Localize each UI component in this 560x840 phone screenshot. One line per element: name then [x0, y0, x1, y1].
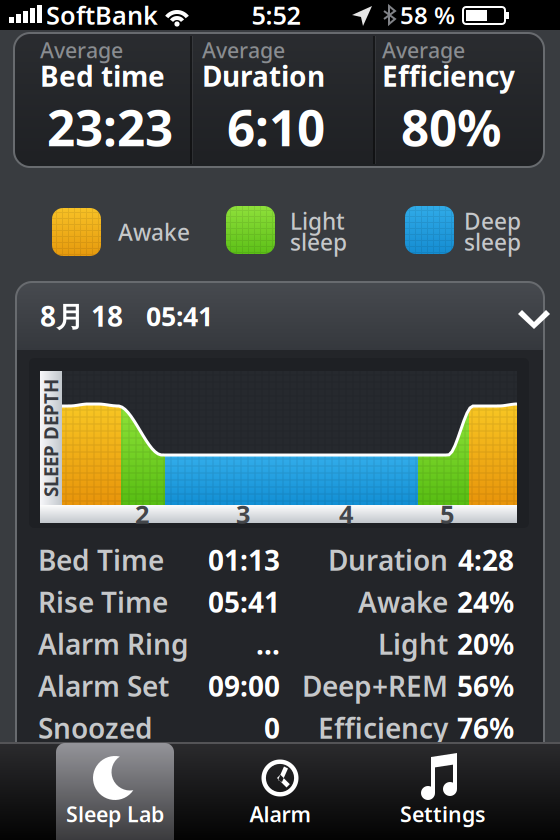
- staticText: Snoozed: [38, 709, 153, 747]
- button[interactable]: Sleep Lab: [56, 743, 174, 840]
- staticText: Average: [202, 36, 285, 64]
- staticText: 20%: [457, 625, 514, 663]
- staticText: 05:41: [208, 583, 280, 621]
- staticText: 5:52: [251, 0, 300, 32]
- staticText: Efficiency: [382, 57, 515, 95]
- staticText: Light: [378, 625, 448, 663]
- button[interactable]: Settings: [384, 743, 502, 840]
- staticText: 4:28: [458, 541, 514, 579]
- staticText: 09:00: [208, 667, 280, 705]
- staticText: Light: [290, 206, 345, 236]
- staticText: sleep: [290, 227, 347, 257]
- staticText: SoftBank: [46, 0, 158, 32]
- staticText: 6:10: [227, 94, 325, 160]
- staticText: Alarm Set: [38, 667, 169, 705]
- staticText: Rise Time: [38, 583, 168, 621]
- staticText: 8月 18: [40, 297, 123, 335]
- staticText: SLEEP DEPTH: [0, 426, 110, 450]
- staticText: 2: [135, 497, 149, 531]
- staticText: 56%: [457, 667, 514, 705]
- staticText: Deep: [464, 206, 521, 236]
- staticText: sleep: [464, 227, 521, 257]
- staticText: Duration: [202, 57, 325, 95]
- button[interactable]: Alarm: [221, 743, 339, 840]
- staticText: ...: [256, 625, 280, 663]
- button[interactable]: Collapse day 8月 18: [16, 282, 544, 350]
- staticText: 4: [339, 497, 353, 531]
- staticText: Bed time: [40, 57, 165, 95]
- staticText: Alarm Ring: [38, 625, 189, 663]
- staticText: Deep+REM: [302, 667, 448, 705]
- staticText: 80%: [401, 94, 501, 160]
- staticText: Average: [40, 36, 123, 64]
- staticText: Average: [382, 36, 465, 64]
- staticText: 5: [440, 497, 454, 531]
- staticText: 01:13: [208, 541, 280, 579]
- staticText: 23:23: [47, 94, 173, 160]
- staticText: Awake: [358, 583, 448, 621]
- staticText: 58 %: [400, 0, 455, 31]
- staticText: Duration: [328, 541, 448, 579]
- staticText: Settings: [400, 800, 486, 828]
- staticText: 24%: [457, 583, 514, 621]
- staticText: Alarm: [249, 800, 310, 828]
- staticText: 3: [236, 497, 250, 531]
- staticText: Awake: [118, 217, 190, 247]
- staticText: Bed Time: [38, 541, 164, 579]
- staticText: 05:41: [146, 298, 213, 334]
- staticText: Sleep Lab: [66, 800, 164, 828]
- staticText: 76%: [457, 709, 514, 747]
- staticText: Efficiency: [318, 709, 448, 747]
- staticText: 0: [264, 709, 280, 747]
